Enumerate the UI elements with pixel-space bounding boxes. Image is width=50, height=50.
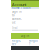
staticText: Register	[12, 39, 21, 46]
staticText: Email	[12, 26, 18, 30]
button[interactable]: Forgot?	[29, 39, 38, 46]
staticText: home / login	[12, 6, 31, 10]
button[interactable]: Log in	[11, 33, 39, 39]
staticText: Forgot?	[29, 39, 38, 46]
staticText: Account	[12, 2, 26, 7]
staticText: Sign in to continue	[12, 10, 22, 24]
staticText: Log in	[20, 34, 29, 38]
button[interactable]: Register	[12, 39, 21, 46]
